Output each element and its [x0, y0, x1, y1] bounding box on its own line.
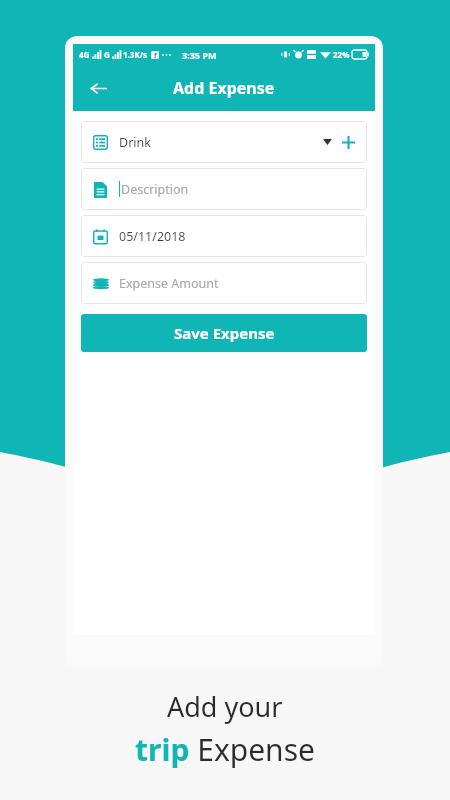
- button[interactable]: Expense Amount: [81, 262, 367, 304]
- button[interactable]: Back: [83, 73, 113, 103]
- staticText: Drink: [119, 134, 151, 151]
- staticText: Add your: [167, 688, 283, 725]
- staticText: 4G: [79, 49, 90, 60]
- staticText: Save Expense: [174, 323, 275, 343]
- staticText: Expense Amount: [119, 275, 219, 292]
- button[interactable]: Save Expense: [81, 314, 367, 352]
- staticText: Add Expense: [173, 77, 275, 99]
- staticText: f: [154, 51, 157, 59]
- staticText: 05/11/2018: [119, 228, 186, 245]
- button[interactable]: 05/11/2018: [81, 215, 367, 257]
- staticText: 1.3K/s: [123, 49, 148, 60]
- button[interactable]: Description: [81, 168, 367, 210]
- staticText: Description: [121, 181, 189, 198]
- staticText: trip Expense: [135, 729, 315, 770]
- staticText: 22%: [333, 49, 350, 60]
- button[interactable]: Drink: [81, 121, 367, 163]
- staticText: 3:35 PM: [182, 49, 217, 61]
- staticText: G: [104, 49, 110, 60]
